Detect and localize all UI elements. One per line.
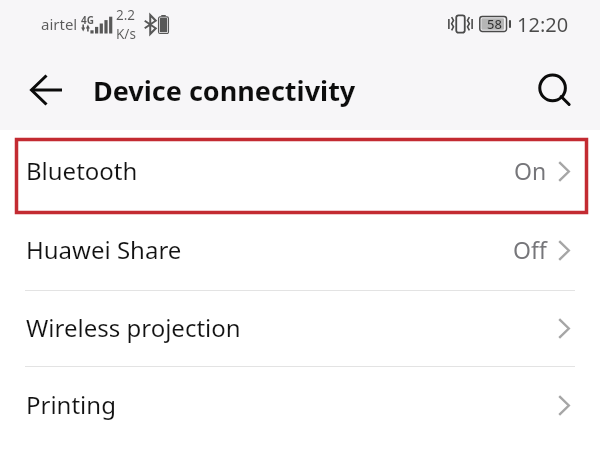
staticText: Off [513,234,547,265]
staticText: airtel [41,14,78,34]
staticText: 4G [81,13,94,27]
staticText: Bluetooth [26,154,138,187]
staticText: Printing [26,388,116,421]
staticText: K/s [116,25,136,43]
staticText: 12:20 [517,11,569,38]
button[interactable]: Search [533,68,581,116]
staticText: On [514,155,547,186]
button[interactable]: Huawei Share [0,212,600,288]
button[interactable]: Printing [0,367,600,443]
staticText: Wireless projection [26,311,241,344]
button[interactable]: Wireless projection [0,290,600,366]
staticText: 2.2 [116,6,136,24]
button[interactable]: Bluetooth [0,133,600,209]
staticText: 58 [487,15,502,33]
staticText: Device connectivity [93,72,356,109]
button[interactable]: Back [18,69,75,111]
staticText: Huawei Share [26,233,182,266]
